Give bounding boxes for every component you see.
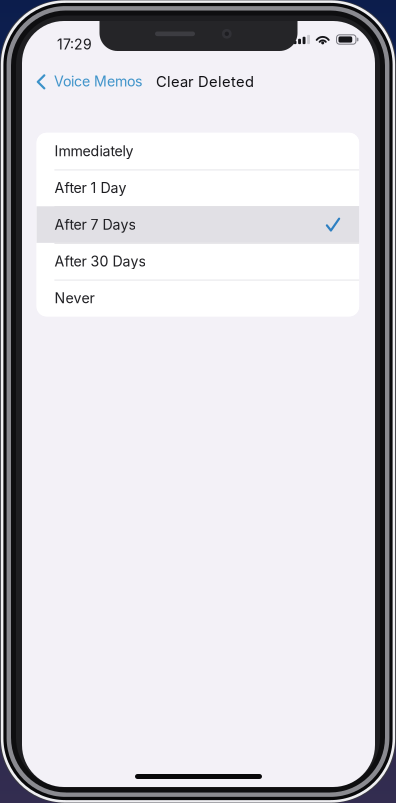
staticText: After 30 Days [54,253,145,270]
staticText: Voice Memos [54,73,142,90]
staticText: 17:29 [57,36,92,53]
button[interactable]: Immediately [37,133,359,169]
staticText: After 1 Day [54,179,126,196]
button[interactable]: Voice Memos [32,67,146,96]
button[interactable]: After 1 Day [37,169,359,206]
button[interactable]: After 7 Days [37,206,359,243]
button[interactable]: After 30 Days [37,243,359,280]
staticText: Immediately [54,143,133,160]
staticText: Never [54,289,94,307]
staticText: Clear Deleted [156,73,254,90]
button[interactable]: Clear Deleted [152,66,258,97]
staticText: After 7 Days [54,216,135,233]
button[interactable]: Never [37,280,359,316]
